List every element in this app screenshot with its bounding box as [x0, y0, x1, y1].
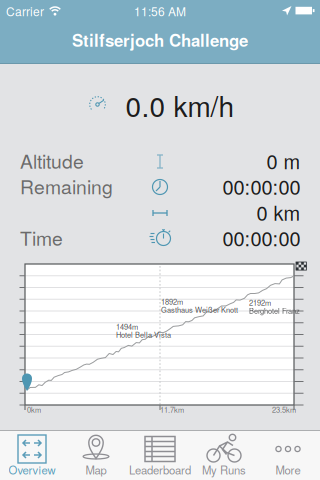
staticText: Gasthaus Weißer Knott — [161, 304, 238, 315]
staticText: 1892m — [161, 296, 183, 307]
staticText: 00:00:00 — [222, 223, 300, 252]
staticText: Hotel Bella Vista — [116, 329, 171, 340]
staticText: 1494m — [116, 321, 138, 332]
staticText: 00:00:00 — [222, 172, 300, 200]
staticText: Carrier — [6, 3, 44, 19]
staticText: 2192m — [249, 297, 271, 308]
staticText: 23.5km — [272, 404, 296, 415]
staticText: Leaderboard — [129, 461, 191, 478]
button[interactable]: My Runs — [192, 430, 256, 480]
staticText: My Runs — [202, 461, 246, 478]
button[interactable]: Overview — [0, 430, 64, 480]
staticText: Map — [85, 461, 106, 478]
staticText: Time — [20, 224, 63, 251]
staticText: 0.0 km/h — [125, 85, 234, 125]
staticText: Stilfserjoch Challenge — [72, 28, 248, 52]
staticText: 11:56 AM — [134, 3, 186, 19]
staticText: Overview — [8, 461, 55, 478]
staticText: 0 m — [266, 146, 300, 175]
button[interactable]: Leaderboard — [128, 430, 192, 480]
staticText: Remaining — [20, 172, 113, 200]
staticText: 0km — [27, 404, 41, 415]
staticText: Altitude — [20, 147, 84, 174]
staticText: More — [275, 461, 300, 478]
staticText: 0 km — [256, 198, 300, 226]
staticText: Berghotel Franzenshöhe — [249, 305, 320, 316]
button[interactable]: Map — [64, 430, 128, 480]
button[interactable]: More — [256, 430, 320, 480]
staticText: 11.7km — [160, 404, 184, 415]
